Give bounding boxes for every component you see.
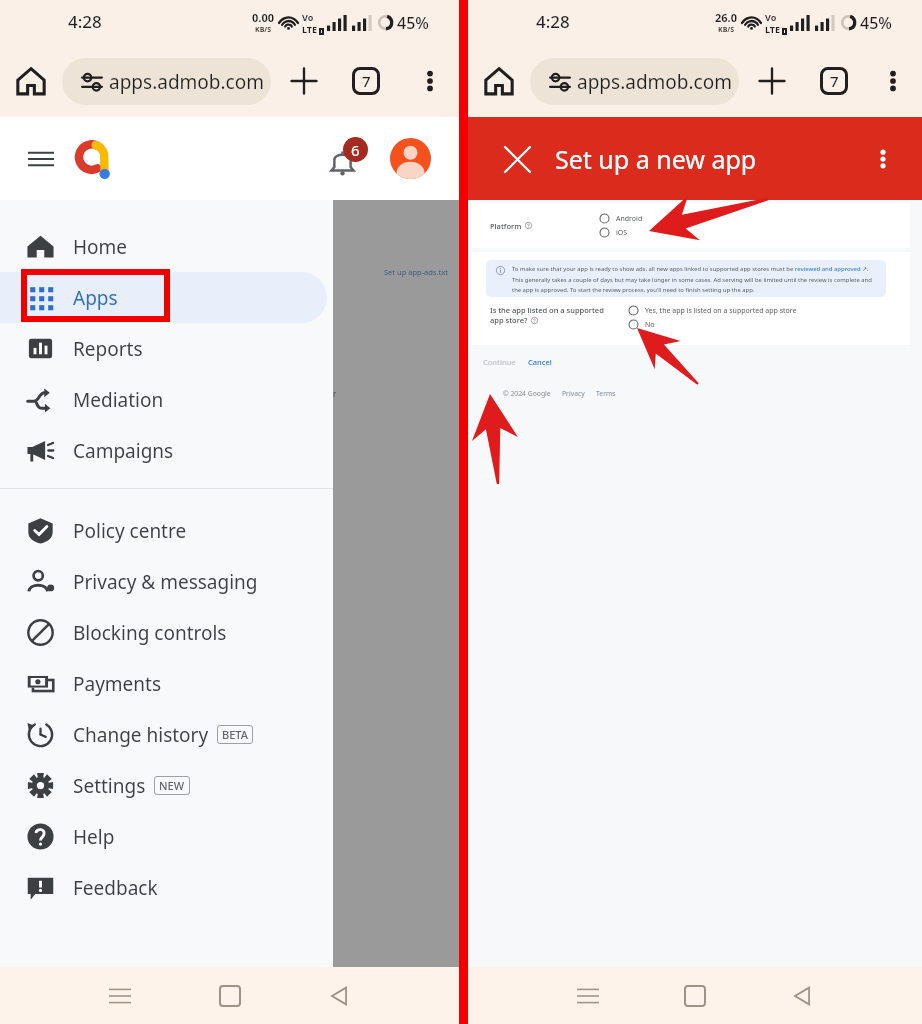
button[interactable]: iOS bbox=[599, 227, 628, 238]
staticText: 26.0 bbox=[715, 10, 737, 25]
button[interactable]: More options bbox=[872, 60, 914, 102]
staticText: KB/S bbox=[718, 25, 735, 35]
button[interactable]: Payments bbox=[0, 658, 327, 709]
button[interactable]: More options bbox=[862, 138, 904, 180]
button[interactable]: New tab bbox=[283, 60, 325, 102]
button[interactable]: Privacy bbox=[562, 389, 585, 398]
button[interactable]: Apps bbox=[0, 272, 327, 323]
staticText: Vo bbox=[302, 11, 314, 23]
button[interactable]: Tabs bbox=[813, 60, 855, 102]
button[interactable]: More options bbox=[409, 60, 451, 102]
staticText: Policy centre bbox=[73, 518, 187, 544]
button[interactable]: Account bbox=[390, 138, 431, 179]
staticText: apps.admob.com bbox=[577, 69, 732, 95]
staticText: Reports bbox=[73, 336, 143, 362]
button[interactable]: Mediation bbox=[0, 374, 327, 425]
button[interactable]: apps.admob.com bbox=[530, 58, 739, 105]
staticText: No bbox=[645, 320, 655, 330]
staticText: Privacy & messaging bbox=[73, 569, 258, 595]
staticText: apps.admob.com bbox=[109, 69, 264, 95]
staticText: Terms bbox=[596, 389, 616, 398]
button[interactable]: apps.admob.com bbox=[62, 58, 271, 105]
button[interactable]: Settings bbox=[0, 760, 327, 811]
staticText: Vo bbox=[765, 11, 777, 23]
button[interactable]: Back bbox=[778, 972, 826, 1020]
staticText: Campaigns bbox=[73, 438, 174, 464]
button[interactable]: Campaigns bbox=[0, 425, 327, 476]
button[interactable]: Privacy & messaging bbox=[0, 556, 327, 607]
staticText: Cancel bbox=[528, 357, 552, 367]
staticText: Yes, the app is listed on a supported ap… bbox=[645, 306, 797, 316]
staticText: © 2024 Google bbox=[503, 389, 551, 398]
staticText: KB/S bbox=[255, 25, 272, 35]
staticText: 7 bbox=[362, 71, 371, 91]
button[interactable]: No bbox=[628, 319, 655, 330]
button[interactable]: Help bbox=[0, 811, 327, 862]
button[interactable]: Recents bbox=[564, 972, 612, 1020]
button[interactable]: Back bbox=[315, 972, 363, 1020]
staticText: 45% bbox=[397, 12, 429, 34]
staticText: Feedback bbox=[73, 875, 158, 901]
staticText: Set up app-ads.txt bbox=[384, 267, 448, 277]
staticText: iOS bbox=[616, 228, 628, 238]
button[interactable]: Feedback bbox=[0, 862, 327, 913]
staticText: LTE bbox=[302, 23, 318, 35]
staticText: Home bbox=[73, 234, 128, 260]
staticText: BETA bbox=[222, 727, 248, 742]
button[interactable]: Home bbox=[9, 59, 53, 103]
button[interactable]: Home bbox=[477, 59, 521, 103]
button[interactable]: Close bbox=[496, 138, 538, 180]
staticText: 4:28 bbox=[68, 10, 102, 33]
staticText: Settings bbox=[73, 773, 146, 799]
button[interactable]: Menu bbox=[18, 136, 64, 182]
staticText: 6 bbox=[351, 140, 360, 160]
button[interactable]: Notifications bbox=[321, 133, 373, 185]
button[interactable]: Recents bbox=[96, 972, 144, 1020]
button[interactable]: Yes, the app is listed on a supported ap… bbox=[628, 305, 797, 316]
staticText: app store? bbox=[490, 315, 528, 325]
button[interactable]: Android bbox=[599, 213, 643, 224]
staticText: Payments bbox=[73, 671, 162, 697]
button[interactable]: Cancel bbox=[528, 353, 552, 371]
staticText: Mediation bbox=[73, 387, 164, 413]
staticText: 0.00 bbox=[252, 10, 274, 25]
staticText: Privacy bbox=[562, 389, 585, 398]
staticText: Continue bbox=[483, 357, 516, 367]
button[interactable]: Continue bbox=[483, 353, 516, 371]
staticText: Platform bbox=[490, 221, 522, 231]
button[interactable]: Home bbox=[0, 221, 327, 272]
staticText: Apps bbox=[73, 285, 118, 311]
staticText: Help bbox=[73, 824, 115, 850]
button[interactable]: Terms bbox=[596, 389, 616, 398]
staticText: 45% bbox=[860, 12, 892, 34]
button[interactable]: New tab bbox=[751, 60, 793, 102]
staticText: 7 bbox=[830, 71, 839, 91]
button[interactable]: Change history bbox=[0, 709, 327, 760]
button[interactable]: Reports bbox=[0, 323, 327, 374]
button[interactable]: Tabs bbox=[345, 60, 387, 102]
staticText: Set up a new app bbox=[555, 142, 757, 176]
staticText: Blocking controls bbox=[73, 620, 227, 646]
staticText: r bbox=[333, 388, 337, 399]
button[interactable]: Home bbox=[206, 972, 254, 1020]
staticText: Android bbox=[616, 214, 643, 224]
staticText: NEW bbox=[159, 778, 185, 793]
staticText: Change history bbox=[73, 722, 209, 748]
staticText: LTE bbox=[765, 23, 781, 35]
staticText: Is the app listed on a supported bbox=[490, 305, 604, 315]
staticText: 4:28 bbox=[536, 10, 570, 33]
button[interactable]: Home bbox=[671, 972, 719, 1020]
button[interactable]: Blocking controls bbox=[0, 607, 327, 658]
button[interactable]: Policy centre bbox=[0, 505, 327, 556]
staticText: To make sure that your app is ready to s… bbox=[512, 265, 878, 294]
